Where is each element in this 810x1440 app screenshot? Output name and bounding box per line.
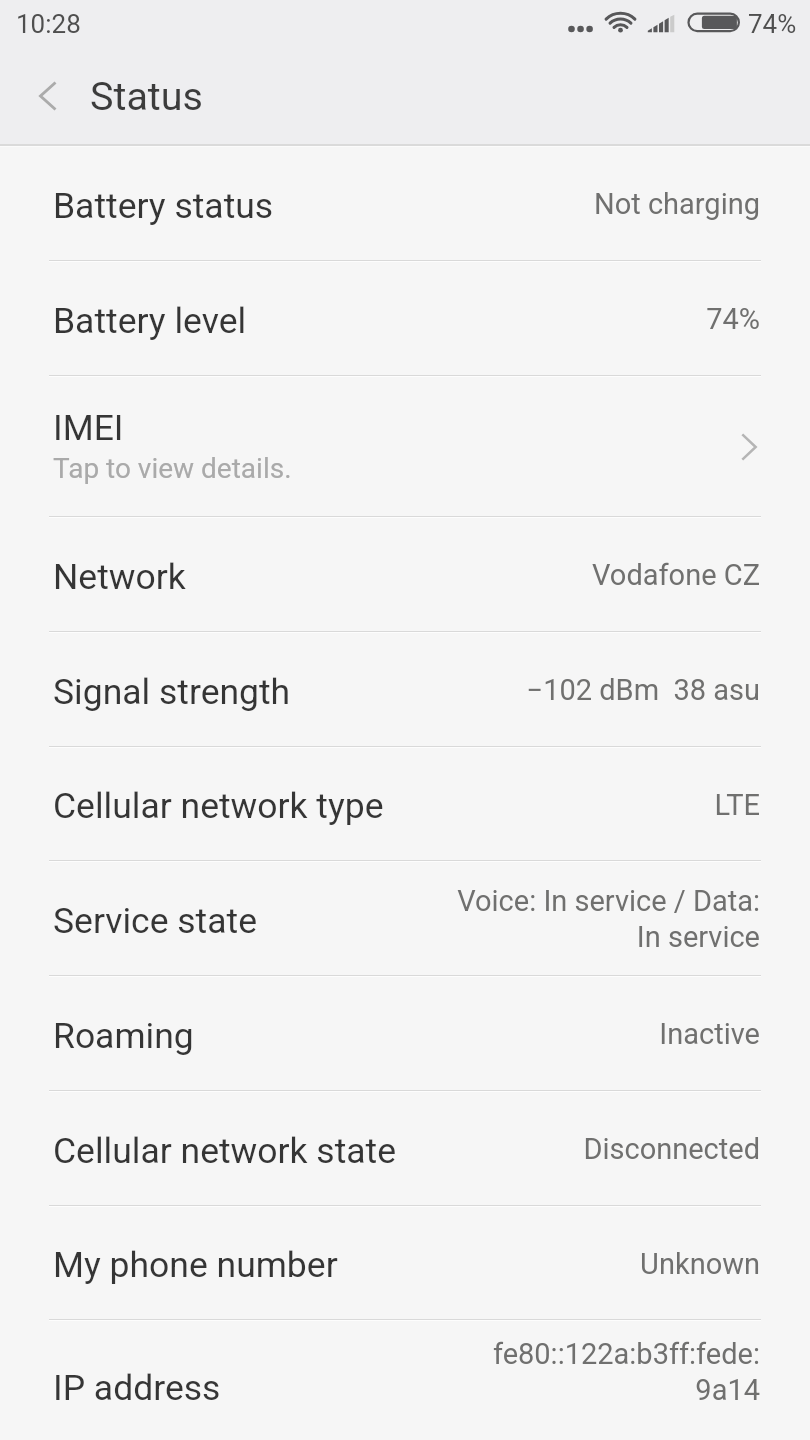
staticText: Disconnected bbox=[407, 1132, 760, 1166]
button[interactable]: Roaming bbox=[0, 977, 810, 1090]
staticText: Battery status bbox=[53, 185, 274, 227]
staticText: fe80::122a:b3ff:fede: 9a14 bbox=[492, 1337, 760, 1407]
button[interactable]: Cellular network type bbox=[0, 748, 810, 860]
staticText: Unknown bbox=[348, 1247, 760, 1281]
button[interactable]: My phone number bbox=[0, 1207, 810, 1319]
staticText: Voice: In service / Data: In service bbox=[267, 884, 760, 954]
staticText: Roaming bbox=[53, 1015, 194, 1057]
button[interactable]: Network bbox=[0, 518, 810, 631]
button[interactable]: Battery level bbox=[0, 262, 810, 375]
staticText: Vodafone CZ bbox=[196, 558, 760, 592]
button[interactable]: Service state bbox=[0, 862, 810, 975]
staticText: Network bbox=[53, 556, 186, 598]
staticText: Service state bbox=[53, 900, 257, 942]
staticText: My phone number bbox=[53, 1244, 338, 1286]
staticText: IMEI bbox=[53, 407, 124, 449]
staticText: Not charging bbox=[284, 187, 760, 221]
button[interactable]: Signal strength bbox=[0, 633, 810, 746]
staticText: Battery level bbox=[53, 300, 247, 342]
button[interactable]: Cellular network state bbox=[0, 1092, 810, 1205]
staticText: 74% bbox=[257, 302, 760, 336]
staticText: Inactive bbox=[204, 1017, 760, 1051]
staticText: Tap to view details. bbox=[53, 452, 292, 485]
staticText: LTE bbox=[394, 788, 760, 822]
staticText: Cellular network type bbox=[53, 785, 384, 827]
button[interactable]: Back bbox=[0, 55, 96, 144]
staticText: Cellular network state bbox=[53, 1130, 397, 1172]
staticText: Status bbox=[90, 73, 203, 119]
staticText: −102 dBm 38 asu bbox=[301, 673, 760, 707]
staticText: 10:28 bbox=[16, 9, 81, 39]
button[interactable]: IMEI bbox=[0, 377, 810, 516]
staticText: IP address bbox=[53, 1367, 221, 1409]
button[interactable]: Battery status bbox=[0, 147, 810, 260]
staticText: Signal strength bbox=[53, 671, 291, 713]
button[interactable]: IP address bbox=[0, 1321, 810, 1440]
staticText: 74% bbox=[748, 9, 797, 39]
